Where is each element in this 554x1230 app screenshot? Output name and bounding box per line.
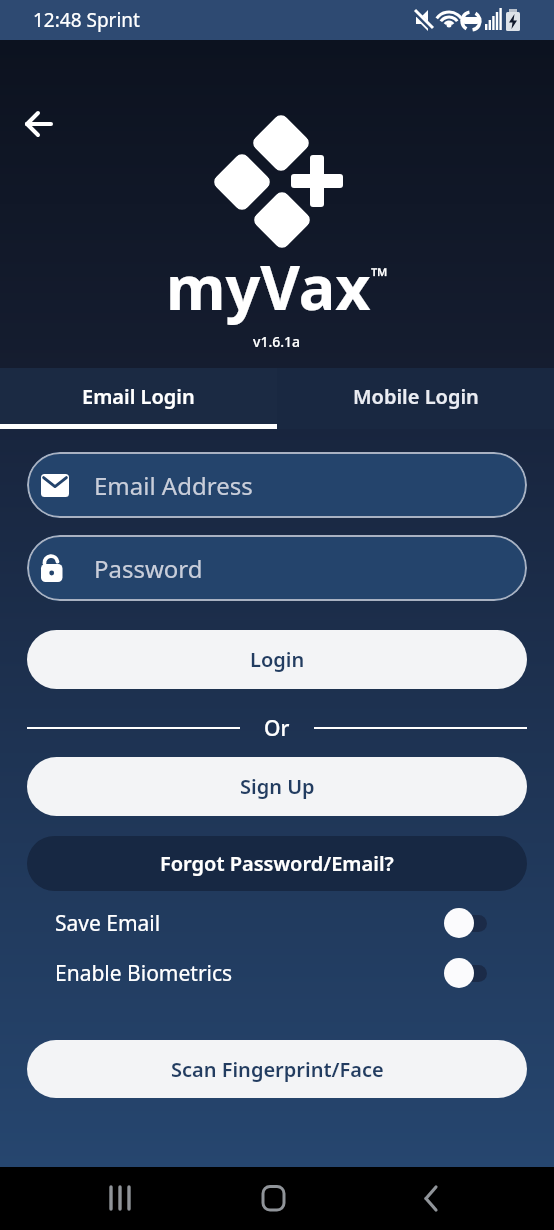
button[interactable]	[444, 908, 487, 938]
staticText: Or	[264, 714, 290, 742]
staticText: Mobile Login	[353, 383, 479, 410]
staticText: Scan Fingerprint/Face	[171, 1056, 384, 1083]
staticText: Save Email	[55, 909, 161, 938]
button[interactable]	[254, 1179, 294, 1219]
button[interactable]: Email Login	[0, 368, 277, 429]
staticText: myVax	[166, 245, 371, 328]
staticText: Email Login	[82, 383, 195, 410]
button[interactable]: Sign Up	[27, 757, 527, 816]
staticText: Email Address	[94, 469, 253, 502]
staticText: Forgot Password/Email?	[160, 850, 394, 877]
button[interactable]: Password	[27, 535, 527, 601]
button[interactable]	[410, 1179, 450, 1219]
staticText: v1.6.1a	[253, 332, 301, 351]
button[interactable]: Login	[27, 630, 527, 689]
button[interactable]	[102, 1179, 142, 1219]
staticText: 12:48 Sprint	[33, 7, 140, 33]
staticText: ™	[371, 260, 389, 290]
button[interactable]: Scan Fingerprint/Face	[27, 1040, 527, 1098]
button[interactable]	[20, 106, 58, 144]
staticText: Sign Up	[240, 773, 315, 800]
button[interactable]: Mobile Login	[277, 368, 554, 429]
staticText: Enable Biometrics	[55, 959, 233, 988]
staticText: Password	[94, 552, 203, 585]
staticText: Login	[250, 646, 305, 673]
button[interactable]	[444, 958, 487, 988]
button[interactable]: Email Address	[27, 452, 527, 518]
button[interactable]: Forgot Password/Email?	[27, 836, 527, 891]
